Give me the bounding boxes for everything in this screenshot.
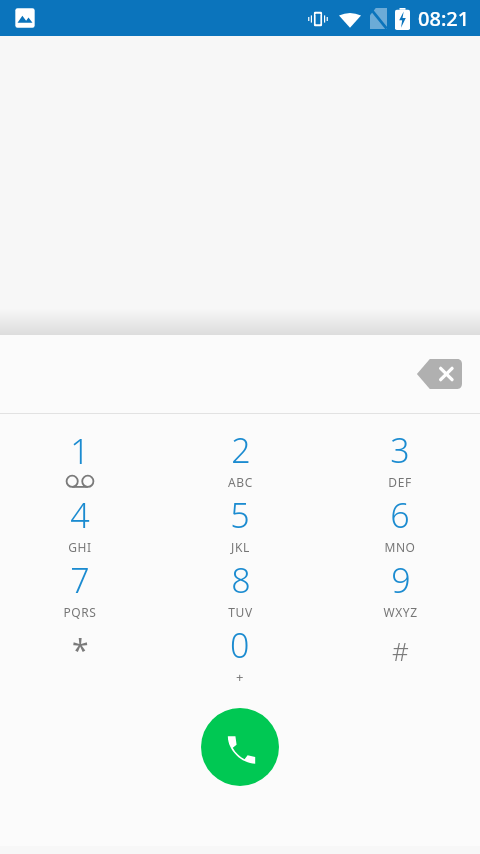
button[interactable]: 5 (160, 491, 320, 556)
button[interactable]: 7 (0, 556, 160, 621)
staticText: MNO (384, 539, 416, 555)
button[interactable]: Call (201, 708, 279, 786)
staticText: 3 (390, 427, 410, 473)
staticText: JKL (231, 539, 250, 555)
button[interactable]: 3 (320, 426, 480, 491)
staticText: 4 (70, 492, 90, 538)
staticText: 1 (70, 428, 90, 474)
staticText: WXYZ (383, 604, 418, 620)
staticText: 8 (231, 557, 251, 603)
staticText: GHI (68, 539, 92, 555)
staticText: # (392, 633, 409, 668)
staticText: 9 (391, 557, 411, 603)
button[interactable]: 8 (160, 556, 320, 621)
staticText: 08:21 (418, 5, 470, 32)
button[interactable]: 6 (320, 491, 480, 556)
staticText: 5 (230, 492, 250, 538)
staticText: ABC (228, 474, 253, 490)
button[interactable]: 4 (0, 491, 160, 556)
button[interactable]: # (320, 621, 480, 686)
staticText: 6 (390, 492, 410, 538)
button[interactable]: 0 (160, 621, 320, 686)
button[interactable]: 9 (320, 556, 480, 621)
staticText: 0 (230, 622, 250, 668)
staticText: DEF (388, 474, 412, 490)
staticText: 2 (231, 427, 251, 473)
button[interactable]: 1 (0, 426, 160, 491)
button[interactable]: 2 (160, 426, 320, 491)
staticText: PQRS (63, 604, 97, 620)
button[interactable]: * (0, 621, 160, 686)
staticText: + (236, 668, 244, 686)
staticText: * (72, 629, 89, 670)
button[interactable]: Backspace (412, 351, 466, 397)
staticText: TUV (228, 604, 253, 620)
staticText: 7 (70, 557, 90, 603)
